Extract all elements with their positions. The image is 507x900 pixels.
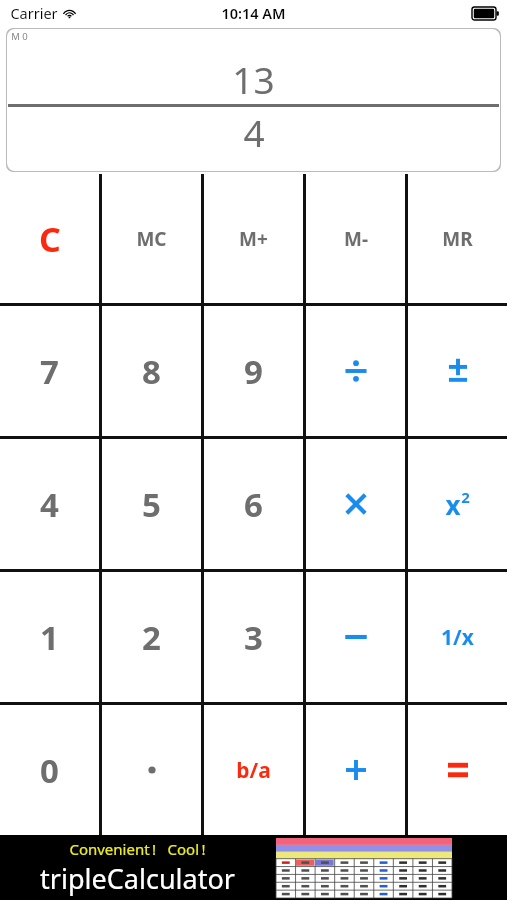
staticText: 0 <box>40 748 59 793</box>
button[interactable]: 7 <box>0 306 99 436</box>
staticText: 10:14 AM <box>221 3 286 23</box>
staticText: 5 <box>142 482 161 527</box>
staticText: 2 <box>142 615 161 660</box>
button[interactable]: Convenient ! Cool ! <box>0 835 507 900</box>
button[interactable]: Plus minus <box>408 306 507 436</box>
staticText: Convenient ! Cool ! <box>69 839 206 859</box>
button[interactable]: M+ <box>204 174 303 303</box>
staticText: MR <box>442 226 473 252</box>
staticText: 1 <box>40 615 59 660</box>
staticText: 4 <box>40 482 59 527</box>
button[interactable]: Minus <box>306 572 405 702</box>
button[interactable]: C <box>0 174 99 303</box>
staticText: 6 <box>244 482 263 527</box>
staticText: M 0 <box>11 30 28 43</box>
staticText: 3 <box>244 615 263 660</box>
staticText: b/a <box>236 756 271 785</box>
staticText: Carrier <box>10 3 58 23</box>
button[interactable]: Divide <box>306 306 405 436</box>
button[interactable]: Equals <box>408 705 507 835</box>
button[interactable]: 4 <box>0 439 99 569</box>
staticText: x <box>445 487 461 522</box>
button[interactable]: 1/x <box>408 572 507 702</box>
button[interactable]: 9 <box>204 306 303 436</box>
button[interactable]: MC <box>102 174 201 303</box>
staticText: 9 <box>244 349 263 394</box>
button[interactable]: 8 <box>102 306 201 436</box>
staticText: tripleCalculator <box>40 860 235 897</box>
button[interactable]: MR <box>408 174 507 303</box>
staticText: 2 <box>461 487 470 507</box>
button[interactable]: 1 <box>0 572 99 702</box>
button[interactable]: 3 <box>204 572 303 702</box>
staticText: M+ <box>239 226 268 252</box>
button[interactable]: 6 <box>204 439 303 569</box>
staticText: 7 <box>40 349 59 394</box>
staticText: 8 <box>142 349 161 394</box>
staticText: 4 <box>243 107 265 157</box>
staticText: 1/x <box>441 623 474 652</box>
button[interactable]: 5 <box>102 439 201 569</box>
button[interactable]: Multiply <box>306 439 405 569</box>
button[interactable]: 0 <box>0 705 99 835</box>
staticText: MC <box>136 226 167 252</box>
button[interactable]: M- <box>306 174 405 303</box>
button[interactable]: Plus <box>306 705 405 835</box>
staticText: 13 <box>232 54 275 104</box>
staticText: M- <box>344 226 368 252</box>
staticText: C <box>39 216 61 262</box>
button[interactable]: x squared <box>408 439 507 569</box>
button[interactable]: b/a <box>204 705 303 835</box>
button[interactable]: Decimal point <box>102 705 201 835</box>
button[interactable]: 2 <box>102 572 201 702</box>
